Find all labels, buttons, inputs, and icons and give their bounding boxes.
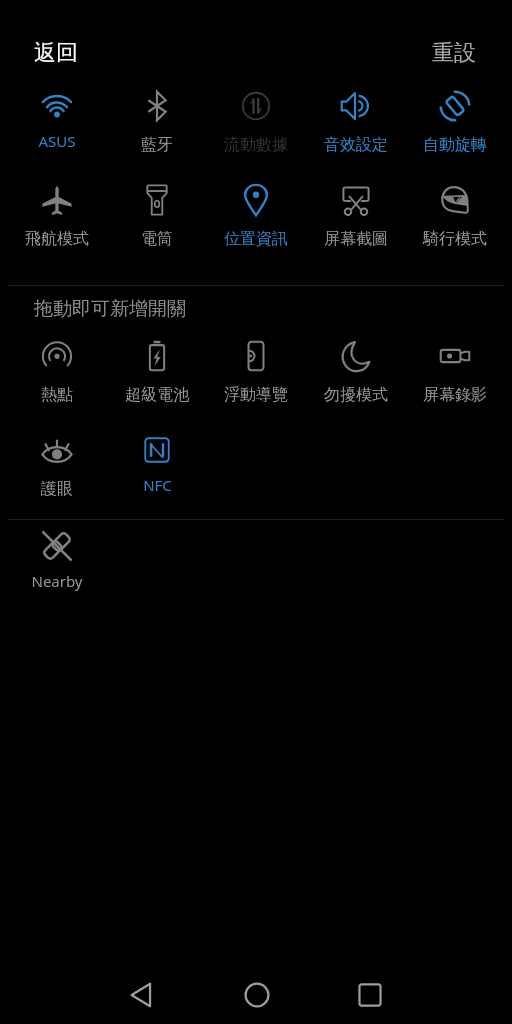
- staticText: 超級電池: [125, 385, 189, 405]
- staticText: 位置資訊: [224, 229, 288, 249]
- button[interactable]: 護眼: [7, 427, 107, 501]
- button[interactable]: ASUS: [7, 83, 107, 157]
- staticText: 護眼: [41, 479, 73, 499]
- button[interactable]: 自動旋轉: [405, 83, 505, 157]
- staticText: 騎行模式: [423, 229, 487, 249]
- button[interactable]: 屏幕錄影: [405, 333, 505, 407]
- button[interactable]: Recents: [342, 967, 398, 1023]
- staticText: 返回: [34, 39, 78, 67]
- button[interactable]: 流動數據: [206, 83, 306, 157]
- button[interactable]: 屏幕截圖: [306, 177, 406, 251]
- button[interactable]: Home: [229, 967, 285, 1023]
- button[interactable]: 音效設定: [306, 83, 406, 157]
- staticText: 流動數據: [224, 135, 288, 155]
- button[interactable]: 藍牙: [107, 83, 207, 157]
- button[interactable]: 超級電池: [107, 333, 207, 407]
- button[interactable]: 熱點: [7, 333, 107, 407]
- staticText: 藍牙: [141, 135, 173, 155]
- button[interactable]: 返回: [20, 33, 92, 73]
- button[interactable]: 電筒: [107, 177, 207, 251]
- button[interactable]: 勿擾模式: [306, 333, 406, 407]
- staticText: 音效設定: [324, 135, 388, 155]
- staticText: 飛航模式: [25, 229, 89, 249]
- button[interactable]: 浮動導覽: [206, 333, 306, 407]
- staticText: 拖動即可新增開關: [34, 297, 186, 321]
- staticText: NFC: [143, 475, 172, 495]
- staticText: 勿擾模式: [324, 385, 388, 405]
- staticText: 自動旋轉: [423, 135, 487, 155]
- button[interactable]: 位置資訊: [206, 177, 306, 251]
- button[interactable]: Nearby: [7, 523, 107, 597]
- button[interactable]: Back: [114, 967, 170, 1023]
- staticText: 屏幕錄影: [423, 385, 487, 405]
- staticText: ASUS: [38, 131, 76, 151]
- button[interactable]: 飛航模式: [7, 177, 107, 251]
- staticText: Nearby: [31, 571, 83, 591]
- button[interactable]: 騎行模式: [405, 177, 505, 251]
- staticText: 電筒: [141, 229, 173, 249]
- staticText: 熱點: [41, 385, 73, 405]
- button[interactable]: NFC: [107, 427, 207, 501]
- staticText: 屏幕截圖: [324, 229, 388, 249]
- staticText: 重設: [432, 39, 476, 67]
- button[interactable]: 重設: [418, 33, 490, 73]
- staticText: 浮動導覽: [224, 385, 288, 405]
